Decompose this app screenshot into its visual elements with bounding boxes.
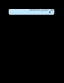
button[interactable] bbox=[0, 0, 64, 83]
staticText: Search your phone bbox=[29, 7, 61, 12]
